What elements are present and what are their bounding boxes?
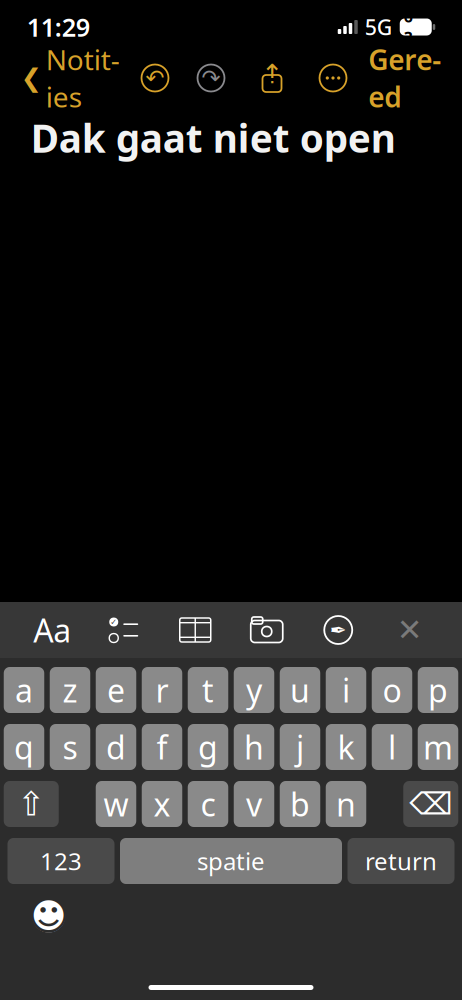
staticText: t — [202, 669, 214, 711]
staticText: e — [107, 669, 125, 711]
button[interactable]: Checklist — [102, 608, 146, 652]
button[interactable]: h — [234, 724, 274, 770]
staticText: x — [153, 783, 170, 825]
staticText: o — [382, 669, 401, 711]
button[interactable]: Close keyboard — [388, 608, 432, 652]
button[interactable]: x — [142, 781, 182, 827]
staticText: 5G — [365, 13, 393, 41]
button[interactable]: y — [234, 667, 274, 713]
button[interactable]: Table — [173, 608, 217, 652]
staticText: ↷ — [201, 65, 220, 91]
button[interactable]: p — [418, 667, 458, 713]
button[interactable]: Delete — [403, 781, 458, 827]
staticText: r — [155, 669, 168, 711]
button[interactable]: ❮ — [11, 56, 130, 100]
staticText: k — [337, 726, 354, 768]
button[interactable]: g — [188, 724, 228, 770]
staticText: ↑ — [261, 59, 283, 89]
button[interactable]: Emoji — [27, 894, 71, 938]
button[interactable]: spatie — [120, 838, 342, 884]
button[interactable]: Redo — [195, 56, 227, 100]
button[interactable]: l — [372, 724, 412, 770]
staticText: l — [388, 726, 396, 768]
staticText: i — [342, 669, 350, 711]
staticText: Dak gaat niet open — [31, 112, 396, 163]
button[interactable]: t — [188, 667, 228, 713]
staticText: n — [336, 783, 356, 825]
staticText: 11:29 — [27, 10, 90, 44]
staticText: return — [365, 845, 437, 877]
staticText: Gereed — [368, 41, 441, 115]
button[interactable]: m — [418, 724, 458, 770]
staticText: ⌫ — [409, 787, 452, 821]
staticText: Notities — [46, 41, 120, 115]
staticText: ↶ — [145, 65, 164, 91]
staticText: a — [15, 669, 33, 711]
staticText: ☺ — [28, 893, 70, 939]
staticText: spatie — [197, 845, 265, 877]
button[interactable]: r — [142, 667, 182, 713]
staticText: h — [244, 726, 264, 768]
staticText: 63 — [404, 6, 413, 48]
button[interactable]: z — [50, 667, 90, 713]
button[interactable]: b — [280, 781, 320, 827]
staticText: c — [200, 783, 215, 825]
button[interactable]: f — [142, 724, 182, 770]
staticText: s — [62, 726, 77, 768]
staticText: w — [103, 783, 128, 825]
button[interactable]: n — [326, 781, 366, 827]
staticText: v — [246, 783, 262, 825]
button[interactable]: c — [188, 781, 228, 827]
staticText: q — [14, 726, 34, 768]
button[interactable]: Gereed — [358, 56, 451, 100]
button[interactable]: w — [96, 781, 136, 827]
staticText: ✕ — [397, 613, 423, 647]
staticText: b — [290, 783, 310, 825]
button[interactable]: i — [326, 667, 366, 713]
staticText: ✓ — [110, 617, 117, 627]
button[interactable]: v — [234, 781, 274, 827]
staticText: ⇧ — [17, 785, 45, 823]
staticText: f — [156, 726, 167, 768]
button[interactable]: Text formatting — [30, 608, 74, 652]
staticText: u — [290, 669, 310, 711]
button[interactable]: a — [4, 667, 44, 713]
staticText: g — [198, 726, 218, 768]
button[interactable]: j — [280, 724, 320, 770]
staticText: m — [423, 726, 453, 768]
staticText: 123 — [40, 845, 82, 877]
button[interactable]: Camera — [245, 608, 289, 652]
button[interactable]: More options — [317, 56, 349, 100]
staticText: ✒ — [330, 619, 347, 641]
staticText: Aa — [33, 609, 71, 651]
button[interactable]: 123 — [7, 838, 114, 884]
staticText: d — [106, 726, 126, 768]
button[interactable]: Share — [257, 56, 287, 100]
button[interactable]: Shift — [4, 781, 59, 827]
button[interactable]: u — [280, 667, 320, 713]
staticText: j — [296, 726, 304, 768]
button[interactable]: e — [96, 667, 136, 713]
staticText: ❮ — [21, 64, 42, 92]
button[interactable]: s — [50, 724, 90, 770]
button[interactable]: Undo — [139, 56, 171, 100]
staticText: z — [62, 669, 77, 711]
button[interactable]: return — [347, 838, 454, 884]
button[interactable]: o — [372, 667, 412, 713]
staticText: p — [428, 669, 448, 711]
button[interactable]: k — [326, 724, 366, 770]
button[interactable]: Markup — [316, 608, 360, 652]
button[interactable]: q — [4, 724, 44, 770]
button[interactable]: d — [96, 724, 136, 770]
staticText: y — [246, 669, 262, 711]
